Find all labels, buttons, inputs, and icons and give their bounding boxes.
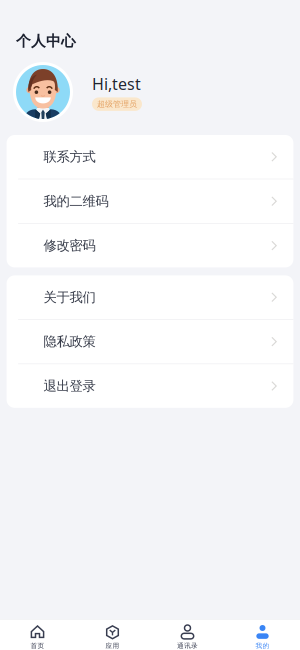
staticText: 我的二维码 <box>44 193 109 209</box>
staticText: 修改密码 <box>44 237 96 254</box>
staticText: 首页 <box>30 642 44 650</box>
staticText: 超级管理员 <box>97 99 137 109</box>
button[interactable]: 应用 <box>75 619 150 650</box>
staticText: 隐私政策 <box>44 333 96 350</box>
staticText: Hi,test <box>92 73 141 94</box>
button[interactable]: 我的 <box>225 619 300 650</box>
button[interactable]: 首页 <box>0 619 75 650</box>
button[interactable]: 联系方式 <box>7 135 293 179</box>
staticText: 应用 <box>105 642 119 650</box>
staticText: 个人中心 <box>16 32 76 50</box>
staticText: 退出登录 <box>44 378 96 394</box>
button[interactable]: 通讯录 <box>150 619 225 650</box>
button[interactable]: 关于我们 <box>7 275 293 319</box>
button[interactable]: 修改密码 <box>7 224 293 267</box>
button[interactable]: 隐私政策 <box>7 320 293 363</box>
staticText: 通讯录 <box>177 642 198 650</box>
staticText: 关于我们 <box>44 289 96 305</box>
button[interactable]: 我的二维码 <box>7 179 293 223</box>
staticText: 我的 <box>255 642 269 650</box>
staticText: 联系方式 <box>44 149 96 165</box>
button[interactable]: 退出登录 <box>7 364 293 408</box>
